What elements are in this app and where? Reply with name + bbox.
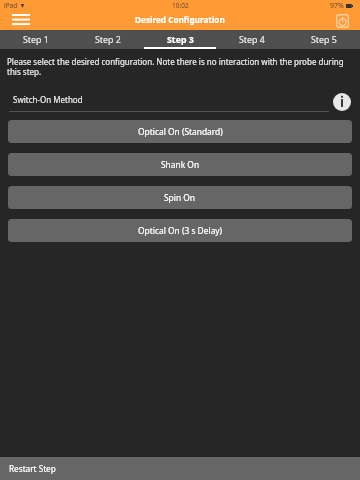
staticText: Step 2 bbox=[95, 34, 121, 46]
staticText: Step 1 bbox=[23, 34, 49, 46]
staticText: Switch-On Method bbox=[13, 94, 83, 105]
staticText: Optical On (Standard) bbox=[138, 126, 223, 137]
staticText: 10:02 bbox=[172, 1, 189, 10]
staticText: Spin On bbox=[164, 192, 196, 203]
staticText: iPad bbox=[4, 1, 18, 10]
button[interactable]: Step 3 bbox=[144, 30, 216, 49]
button[interactable]: Step 2 bbox=[72, 30, 144, 49]
staticText: Shank On bbox=[161, 159, 200, 170]
staticText: 97% bbox=[330, 1, 344, 11]
staticText: Please select the desired configuration.… bbox=[7, 56, 348, 77]
staticText: Restart Step bbox=[9, 463, 56, 474]
button[interactable]: Probe settings bbox=[333, 11, 352, 30]
staticText: Step 5 bbox=[311, 34, 337, 46]
button[interactable]: Info bbox=[333, 93, 351, 111]
button[interactable]: Spin On bbox=[8, 186, 352, 209]
button[interactable]: Shank On bbox=[8, 153, 352, 176]
button[interactable]: Restart Step bbox=[0, 457, 360, 480]
button[interactable]: Optical On (Standard) bbox=[8, 120, 352, 143]
staticText: Desired Configuration bbox=[135, 14, 225, 25]
button[interactable]: Step 5 bbox=[288, 30, 360, 49]
staticText: Step 4 bbox=[239, 34, 265, 46]
staticText: Optical On (3 s Delay) bbox=[138, 225, 223, 236]
button[interactable]: Menu bbox=[0, 11, 40, 30]
button[interactable]: Optical On (3 s Delay) bbox=[8, 219, 352, 242]
staticText: Step 3 bbox=[167, 34, 194, 46]
button[interactable]: Step 4 bbox=[216, 30, 288, 49]
button[interactable]: Step 1 bbox=[0, 30, 72, 49]
